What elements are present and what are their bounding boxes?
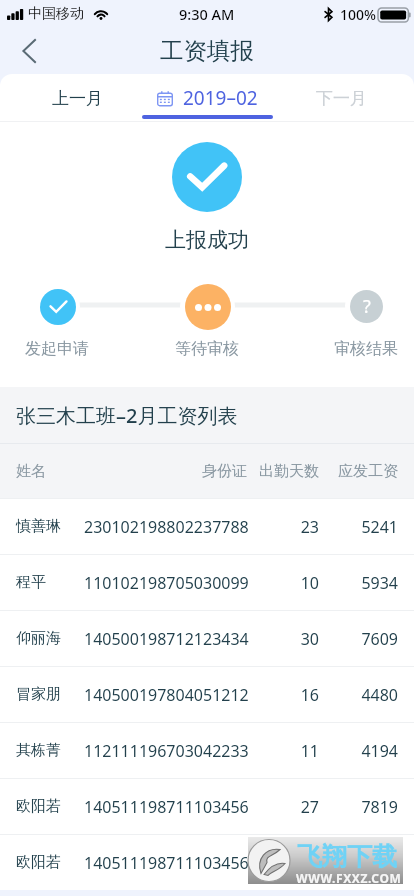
staticText: 仰丽海: [16, 629, 84, 648]
staticText: 100%: [340, 5, 376, 24]
button[interactable]: 下一月: [286, 74, 396, 122]
staticText: 140500197804051212: [84, 684, 258, 706]
staticText: 4480: [334, 684, 398, 706]
staticText: 140500198712123434: [84, 628, 258, 650]
staticText: 工资填报: [160, 36, 254, 66]
button[interactable]: 欧阳若: [16, 835, 398, 890]
staticText: 112111196703042233: [84, 740, 258, 762]
staticText: 等待审核: [175, 339, 239, 359]
button[interactable]: Back: [0, 28, 58, 74]
staticText: 发起申请: [25, 339, 89, 359]
staticText: 姓名: [16, 462, 46, 481]
button[interactable]: 其栋菁: [16, 723, 398, 778]
staticText: 16: [258, 684, 319, 706]
staticText: 4194: [334, 740, 398, 762]
staticText: [334, 852, 398, 874]
staticText: 5241: [334, 516, 398, 538]
staticText: [258, 852, 319, 874]
staticText: 上报成功: [165, 227, 249, 253]
staticText: 30: [258, 628, 319, 650]
staticText: 身份证: [202, 462, 247, 481]
staticText: 欧阳若: [16, 797, 84, 816]
staticText: 230102198802237788: [84, 516, 258, 538]
staticText: 程平: [16, 573, 84, 592]
staticText: 飞翔下载: [297, 841, 397, 872]
staticText: 中国移动: [28, 5, 84, 23]
staticText: 140511198711103456: [84, 796, 258, 818]
button[interactable]: 2019–02: [137, 74, 277, 122]
staticText: 110102198705030099: [84, 572, 258, 594]
staticText: 慎善琳: [16, 517, 84, 536]
button[interactable]: 等待审核: [147, 287, 267, 359]
staticText: 140511198711103456: [84, 852, 258, 874]
staticText: 9:30 AM: [179, 4, 235, 24]
staticText: 上一月: [52, 88, 103, 109]
staticText: 张三木工班–2月工资列表: [16, 402, 238, 429]
button[interactable]: 欧阳若: [16, 779, 398, 834]
staticText: WWW.FXXZ.COM: [296, 870, 402, 886]
staticText: 11: [258, 740, 319, 762]
staticText: 出勤天数: [258, 462, 319, 481]
staticText: 欧阳若: [16, 853, 84, 872]
staticText: 审核结果: [334, 339, 398, 359]
staticText: 7819: [334, 796, 398, 818]
button[interactable]: 程平: [16, 555, 398, 610]
staticText: 10: [258, 572, 319, 594]
staticText: 23: [258, 516, 319, 538]
staticText: 其栋菁: [16, 741, 84, 760]
button[interactable]: 冒家朋: [16, 667, 398, 722]
staticText: 2019–02: [183, 85, 258, 111]
button[interactable]: 上一月: [22, 74, 132, 122]
staticText: ?: [363, 294, 371, 319]
staticText: 应发工资: [334, 462, 398, 481]
staticText: 5934: [334, 572, 398, 594]
button[interactable]: 慎善琳: [16, 499, 398, 554]
staticText: 下一月: [316, 88, 367, 109]
staticText: 7609: [334, 628, 398, 650]
staticText: 27: [258, 796, 319, 818]
button[interactable]: 仰丽海: [16, 611, 398, 666]
button[interactable]: ?: [306, 287, 414, 359]
staticText: 冒家朋: [16, 685, 84, 704]
button[interactable]: 发起申请: [0, 287, 117, 359]
